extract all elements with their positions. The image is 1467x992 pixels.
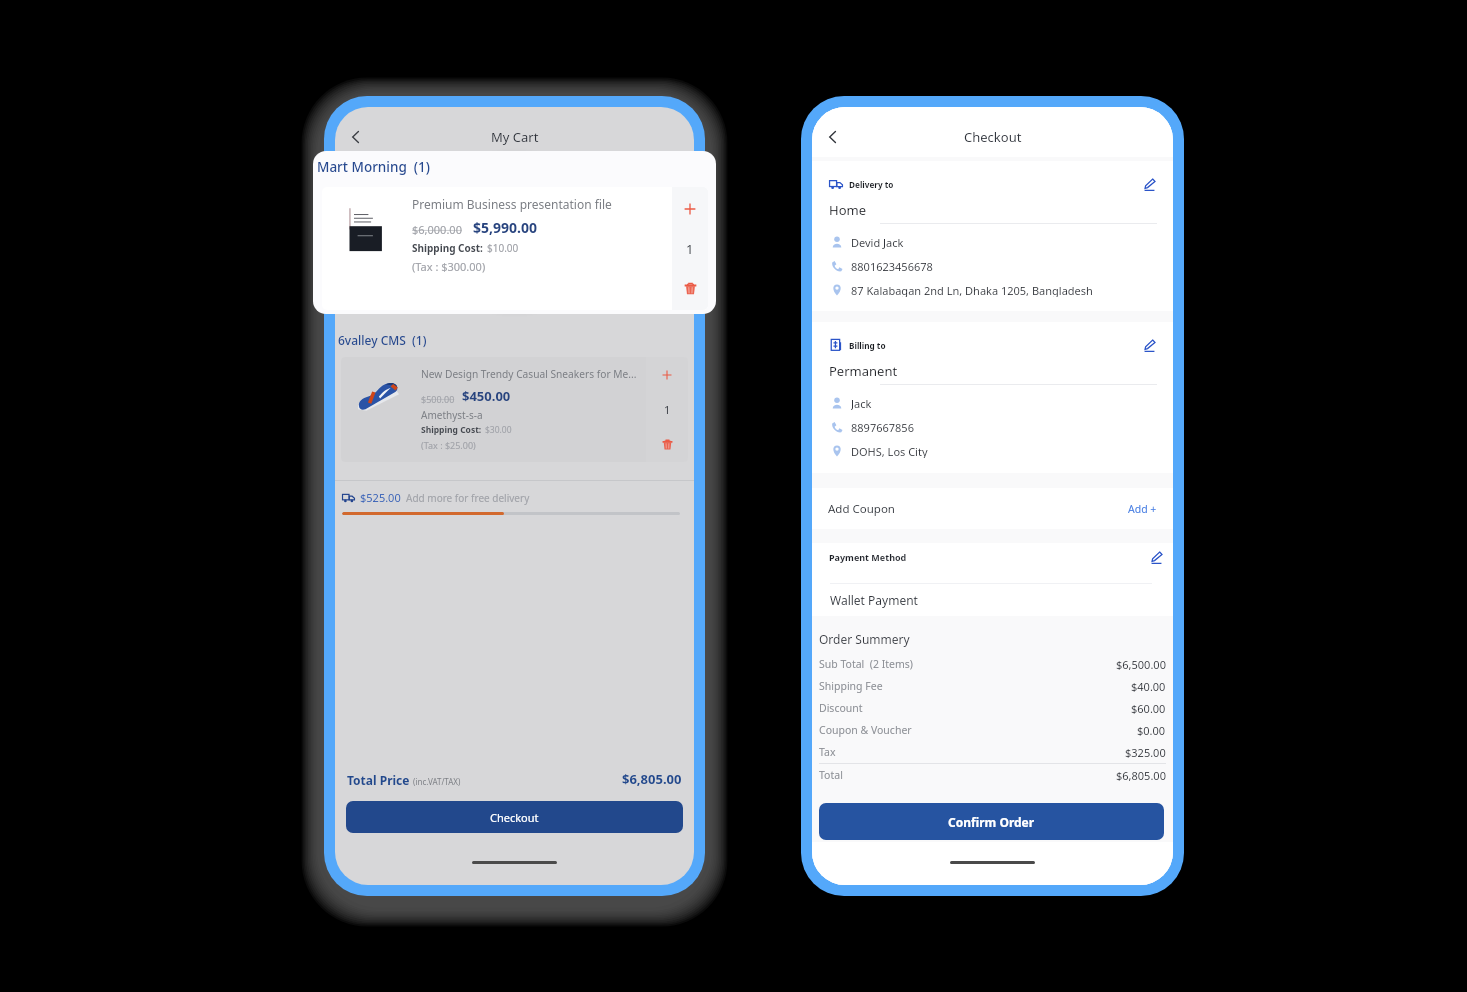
staticText: Checkout [964, 128, 1022, 146]
button[interactable]: Increase [658, 366, 676, 384]
staticText: 8801623456678 [851, 259, 933, 273]
staticText: Discount [819, 701, 863, 715]
button[interactable]: Delete [658, 435, 676, 453]
staticText: Add Coupon [828, 501, 895, 517]
button[interactable]: Premium Business presentation file [322, 187, 708, 310]
staticText: $6,805.00 [622, 770, 682, 788]
button[interactable]: Increase [658, 189, 676, 207]
button[interactable]: Checkout [346, 801, 683, 833]
staticText: Billing to [849, 340, 886, 351]
staticText: Permanent [829, 362, 898, 380]
staticText: Add more for free delivery [406, 491, 530, 505]
staticText: $500.00 [421, 393, 455, 405]
button[interactable]: Back [817, 122, 847, 152]
staticText: (Tax : $25.00) [421, 439, 476, 451]
staticText: $6,805.00 [1116, 768, 1166, 783]
staticText: Confirm Order [948, 814, 1035, 830]
staticText: $525.00 [360, 490, 401, 505]
staticText: $10.00 [487, 241, 519, 255]
staticText: 8897667856 [851, 420, 914, 434]
staticText: DOHS, Los City [851, 444, 928, 458]
staticText: 6valley CMS (1) [338, 332, 427, 348]
staticText: Shipping Fee [819, 679, 883, 693]
staticText: Total Price [347, 772, 410, 788]
staticText: $30.00 [485, 424, 512, 436]
staticText: $10.00 [485, 231, 512, 243]
staticText: $0.00 [1137, 723, 1166, 738]
staticText: Jack [851, 396, 872, 410]
staticText: Mart Morning (1) [317, 158, 430, 176]
button[interactable]: Edit Billing to [1139, 335, 1159, 355]
staticText: $60.00 [1131, 701, 1166, 716]
staticText: Order Summery [819, 631, 910, 647]
button[interactable]: Confirm Order [819, 803, 1164, 840]
button[interactable]: Increase quantity [680, 199, 700, 219]
staticText: $325.00 [1125, 745, 1166, 760]
staticText: Total [819, 768, 843, 782]
button[interactable]: Delete item [680, 278, 700, 298]
button[interactable]: Premium Business presentation file [341, 180, 688, 283]
staticText: $6,000.00 [412, 222, 462, 237]
staticText: (Tax : $300.00) [421, 246, 481, 258]
staticText: $6,500.00 [1116, 657, 1166, 672]
staticText: $450.00 [462, 387, 511, 405]
staticText: $5,990.00 [469, 210, 529, 228]
staticText: Add + [1128, 502, 1157, 516]
staticText: (inc.VAT/TAX) [413, 776, 461, 787]
staticText: Mart Morning (1) [338, 159, 439, 175]
staticText: Tax [819, 745, 836, 759]
staticText: Home [829, 201, 866, 219]
staticText: $6,000.00 [421, 216, 462, 228]
button[interactable]: Edit Delivery to [1139, 174, 1159, 194]
button[interactable]: Wallet Payment [812, 584, 1173, 616]
staticText: New Design Trendy Casual Sneakers for Me… [421, 367, 637, 381]
staticText: (Tax : $300.00) [412, 259, 486, 274]
staticText: Wallet Payment [830, 592, 918, 608]
staticText: Premium Business presentation file [421, 190, 591, 204]
staticText: 87 Kalabagan 2nd Ln, Dhaka 1205, Banglad… [851, 283, 1093, 297]
button[interactable]: New Design Trendy Casual Sneakers for Me… [341, 357, 688, 462]
staticText: Checkout [490, 810, 539, 825]
staticText: $40.00 [1131, 679, 1166, 694]
staticText: Shipping Cost: [421, 231, 482, 243]
button[interactable]: Add Coupon [812, 488, 1173, 529]
staticText: Shipping Cost: [421, 424, 482, 436]
staticText: Payment Method [829, 551, 907, 563]
staticText: My Cart [491, 128, 539, 146]
staticText: Coupon & Voucher [819, 723, 912, 737]
button[interactable]: Edit payment method [1146, 547, 1166, 567]
staticText: Premium Business presentation file [412, 196, 612, 212]
staticText: Amethyst-s-a [421, 408, 483, 422]
staticText: Sub Total (2 Items) [819, 657, 913, 671]
staticText: 1 [686, 240, 694, 258]
staticText: 1 [664, 402, 671, 417]
staticText: Shipping Cost: [412, 241, 483, 255]
staticText: Devid Jack [851, 235, 904, 249]
staticText: Delivery to [849, 179, 894, 190]
staticText: $5,990.00 [473, 218, 537, 237]
button[interactable]: Delete [658, 256, 676, 274]
button[interactable]: Back [340, 122, 370, 152]
